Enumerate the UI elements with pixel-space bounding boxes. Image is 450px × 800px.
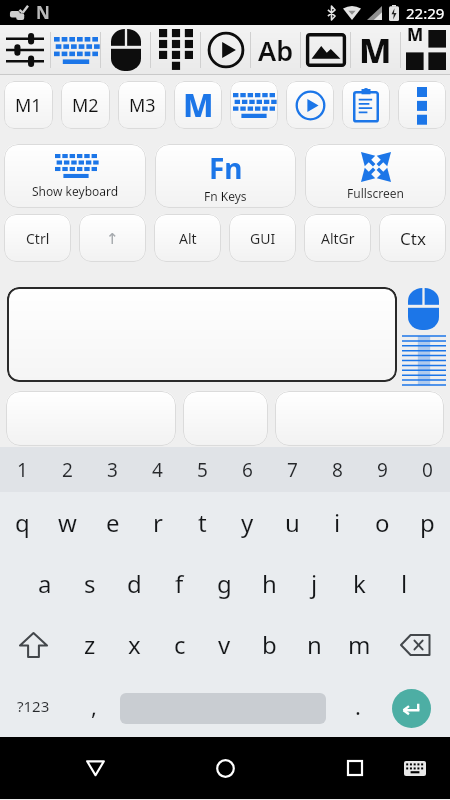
button[interactable]: [0, 614, 67, 675]
staticText: 4: [152, 457, 163, 483]
button[interactable]: [201, 25, 250, 75]
button[interactable]: Ctrl: [4, 214, 71, 262]
button[interactable]: [183, 391, 268, 446]
staticText: Ctrl: [26, 229, 50, 248]
button[interactable]: M1: [4, 81, 53, 129]
button[interactable]: v: [202, 614, 247, 675]
button[interactable]: e: [90, 492, 135, 553]
staticText: 3: [107, 457, 118, 483]
button[interactable]: Fn: [155, 144, 296, 208]
button[interactable]: Ctx: [379, 214, 446, 262]
button[interactable]: 5: [180, 447, 225, 492]
button[interactable]: u: [270, 492, 315, 553]
staticText: Alt: [179, 229, 197, 248]
button[interactable]: [101, 25, 150, 75]
button[interactable]: [79, 752, 111, 784]
staticText: o: [375, 506, 390, 539]
staticText: 1: [17, 457, 28, 483]
button[interactable]: s: [67, 553, 112, 614]
staticText: b: [262, 628, 277, 661]
button[interactable]: g: [202, 553, 247, 614]
button[interactable]: 3: [90, 447, 135, 492]
button[interactable]: i: [315, 492, 360, 553]
button[interactable]: M2: [61, 81, 110, 129]
button[interactable]: o: [360, 492, 405, 553]
button[interactable]: 6: [225, 447, 270, 492]
button[interactable]: z: [67, 614, 112, 675]
button[interactable]: 4: [135, 447, 180, 492]
button[interactable]: 1: [0, 447, 45, 492]
button[interactable]: 9: [360, 447, 405, 492]
button[interactable]: [382, 614, 450, 675]
button[interactable]: k: [337, 553, 382, 614]
button[interactable]: AltGr: [304, 214, 371, 262]
button[interactable]: M: [174, 81, 222, 129]
button[interactable]: M: [351, 25, 400, 75]
button[interactable]: [398, 81, 446, 129]
button[interactable]: y: [225, 492, 270, 553]
button[interactable]: d: [112, 553, 157, 614]
button[interactable]: [392, 689, 431, 728]
button[interactable]: [6, 391, 176, 446]
staticText: x: [128, 628, 141, 661]
button[interactable]: p: [405, 492, 450, 553]
button[interactable]: t: [180, 492, 225, 553]
button[interactable]: w: [45, 492, 90, 553]
staticText: c: [174, 628, 186, 661]
staticText: Show keyboard: [32, 183, 119, 199]
button[interactable]: l: [382, 553, 427, 614]
button[interactable]: [209, 752, 241, 784]
button[interactable]: m: [337, 614, 382, 675]
staticText: 0: [422, 457, 433, 483]
button[interactable]: x: [112, 614, 157, 675]
button[interactable]: M: [401, 25, 450, 75]
button[interactable]: .: [326, 675, 389, 737]
button[interactable]: ↑: [79, 214, 146, 262]
button[interactable]: b: [247, 614, 292, 675]
button[interactable]: [339, 752, 371, 784]
button[interactable]: 8: [315, 447, 360, 492]
button[interactable]: [402, 336, 446, 385]
button[interactable]: 7: [270, 447, 315, 492]
button[interactable]: [230, 81, 278, 129]
button[interactable]: f: [157, 553, 202, 614]
button[interactable]: c: [157, 614, 202, 675]
button[interactable]: Alt: [154, 214, 221, 262]
staticText: j: [311, 567, 318, 600]
button[interactable]: Fullscreen: [305, 144, 446, 208]
staticText: M: [183, 83, 214, 127]
button[interactable]: M3: [118, 81, 166, 129]
button[interactable]: [7, 287, 397, 382]
button[interactable]: [402, 755, 428, 781]
button[interactable]: Ab: [251, 25, 300, 75]
button[interactable]: [408, 288, 439, 330]
button[interactable]: [51, 25, 100, 75]
button[interactable]: h: [247, 553, 292, 614]
button[interactable]: Show keyboard: [4, 144, 146, 208]
button[interactable]: r: [135, 492, 180, 553]
staticText: 9: [377, 457, 388, 483]
staticText: g: [217, 567, 232, 600]
staticText: 8: [332, 457, 343, 483]
button[interactable]: GUI: [229, 214, 296, 262]
staticText: t: [198, 506, 207, 539]
button[interactable]: [286, 81, 334, 129]
button[interactable]: [275, 391, 444, 446]
button[interactable]: [151, 25, 200, 75]
staticText: q: [15, 506, 30, 539]
staticText: M1: [15, 93, 42, 118]
button[interactable]: 0: [405, 447, 450, 492]
staticText: Fn: [209, 149, 243, 187]
button[interactable]: [0, 25, 50, 75]
button[interactable]: q: [0, 492, 45, 553]
button[interactable]: 2: [45, 447, 90, 492]
button[interactable]: a: [22, 553, 67, 614]
button[interactable]: j: [292, 553, 337, 614]
button[interactable]: ?123: [0, 675, 67, 737]
button[interactable]: [342, 81, 390, 129]
button[interactable]: [301, 25, 350, 75]
button[interactable]: n: [292, 614, 337, 675]
button[interactable]: ,: [67, 675, 120, 737]
staticText: Fn Keys: [204, 188, 247, 204]
